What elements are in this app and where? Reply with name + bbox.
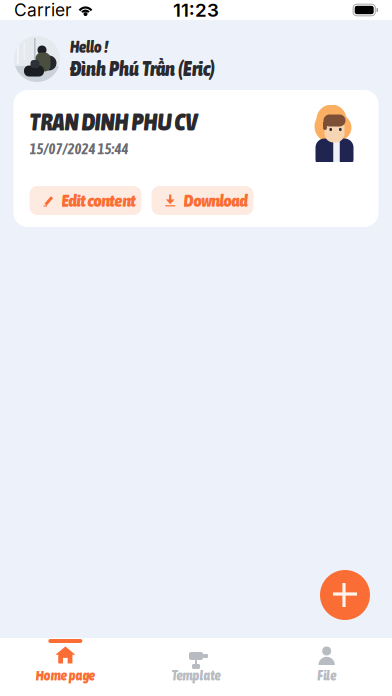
- staticText: Home page: [36, 667, 95, 683]
- staticText: Carrier: [14, 0, 72, 20]
- staticText: Edit content: [61, 191, 135, 210]
- staticText: File: [317, 667, 336, 683]
- staticText: TRAN DINH PHU CV: [29, 108, 197, 135]
- button[interactable]: Create new CV: [320, 570, 370, 620]
- button[interactable]: Download: [151, 186, 253, 215]
- staticText: Hello !: [70, 38, 108, 56]
- staticText: Template: [171, 667, 220, 683]
- staticText: 11:23: [173, 0, 219, 21]
- staticText: Đình Phú Trần (Eric): [70, 57, 215, 80]
- staticText: Download: [183, 191, 247, 210]
- staticText: 15/07/2024 15:44: [29, 140, 128, 157]
- button[interactable]: Template: [131, 638, 261, 696]
- button[interactable]: Home page: [0, 638, 131, 696]
- button[interactable]: Edit content: [29, 186, 141, 215]
- button[interactable]: File: [261, 638, 392, 696]
